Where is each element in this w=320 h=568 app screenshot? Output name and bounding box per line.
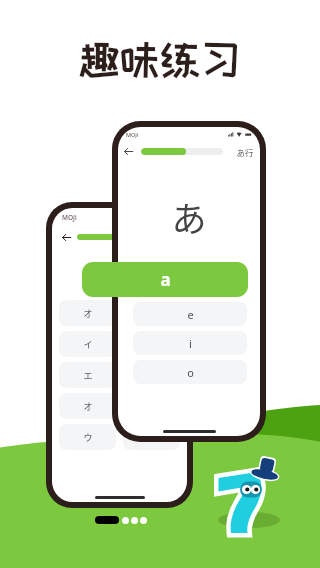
staticText: i: [189, 336, 192, 351]
staticText: あ行: [236, 146, 254, 158]
staticText: ウ: [83, 431, 93, 444]
button[interactable]: ウ: [123, 331, 180, 357]
button[interactable]: i: [133, 331, 247, 355]
staticText: エ: [83, 369, 93, 382]
button[interactable]: Back: [60, 231, 73, 244]
staticText: e: [187, 307, 194, 322]
button[interactable]: イ: [59, 331, 116, 357]
button[interactable]: ウ: [59, 424, 116, 450]
button[interactable]: a: [82, 262, 248, 297]
button[interactable]: ア: [123, 424, 180, 450]
staticText: イ: [83, 338, 93, 351]
button[interactable]: Back: [124, 147, 133, 156]
staticText: o: [187, 365, 194, 380]
staticText: a: [160, 268, 171, 291]
button[interactable]: イ: [123, 362, 180, 388]
staticText: MOJi: [126, 131, 139, 138]
staticText: MOJi: [62, 213, 77, 222]
staticText: オ: [83, 400, 93, 413]
staticText: オ: [83, 307, 93, 320]
button[interactable]: オ: [59, 393, 116, 419]
button[interactable]: オ: [59, 300, 116, 326]
button[interactable]: e: [133, 302, 247, 326]
button[interactable]: ア: [123, 300, 180, 326]
staticText: ア: [147, 431, 157, 444]
staticText: 趣味练习: [0, 37, 320, 81]
staticText: あ: [118, 191, 260, 242]
button[interactable]: o: [133, 360, 247, 384]
button[interactable]: エ: [59, 362, 116, 388]
